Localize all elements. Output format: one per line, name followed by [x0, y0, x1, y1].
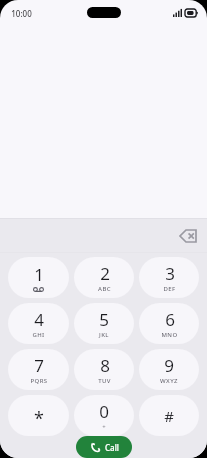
button[interactable]: 5: [74, 303, 134, 344]
staticText: 9: [164, 354, 174, 377]
button[interactable]: 8: [74, 349, 134, 390]
staticText: GHI: [32, 331, 45, 339]
button[interactable]: 1: [8, 257, 69, 298]
staticText: MNO: [161, 331, 178, 339]
button[interactable]: *: [8, 395, 69, 436]
staticText: 10:00: [11, 8, 32, 19]
staticText: #: [164, 406, 174, 426]
staticText: 0: [99, 400, 109, 423]
staticText: PQRS: [30, 377, 48, 385]
button[interactable]: 3: [139, 257, 199, 298]
staticText: 7: [34, 354, 44, 377]
staticText: DEF: [163, 285, 176, 293]
staticText: 1: [34, 263, 44, 286]
staticText: *: [34, 406, 44, 431]
button[interactable]: Backspace: [177, 225, 199, 247]
button[interactable]: 6: [139, 303, 199, 344]
button[interactable]: 9: [139, 349, 199, 390]
staticText: Call: [105, 442, 119, 453]
staticText: TUV: [98, 377, 111, 385]
staticText: WXYZ: [160, 377, 178, 385]
staticText: ABC: [98, 285, 111, 293]
button[interactable]: #: [139, 395, 199, 436]
button[interactable]: Call: [76, 436, 132, 458]
staticText: JKL: [99, 331, 109, 339]
staticText: +: [102, 423, 106, 431]
button[interactable]: 0: [74, 395, 134, 436]
staticText: 3: [165, 262, 175, 285]
button[interactable]: 4: [8, 303, 69, 344]
button[interactable]: 2: [74, 257, 134, 298]
staticText: 4: [34, 308, 44, 331]
staticText: 6: [165, 308, 175, 331]
staticText: 5: [99, 308, 109, 331]
staticText: 8: [100, 354, 110, 377]
staticText: 2: [100, 262, 110, 285]
button[interactable]: 7: [8, 349, 69, 390]
